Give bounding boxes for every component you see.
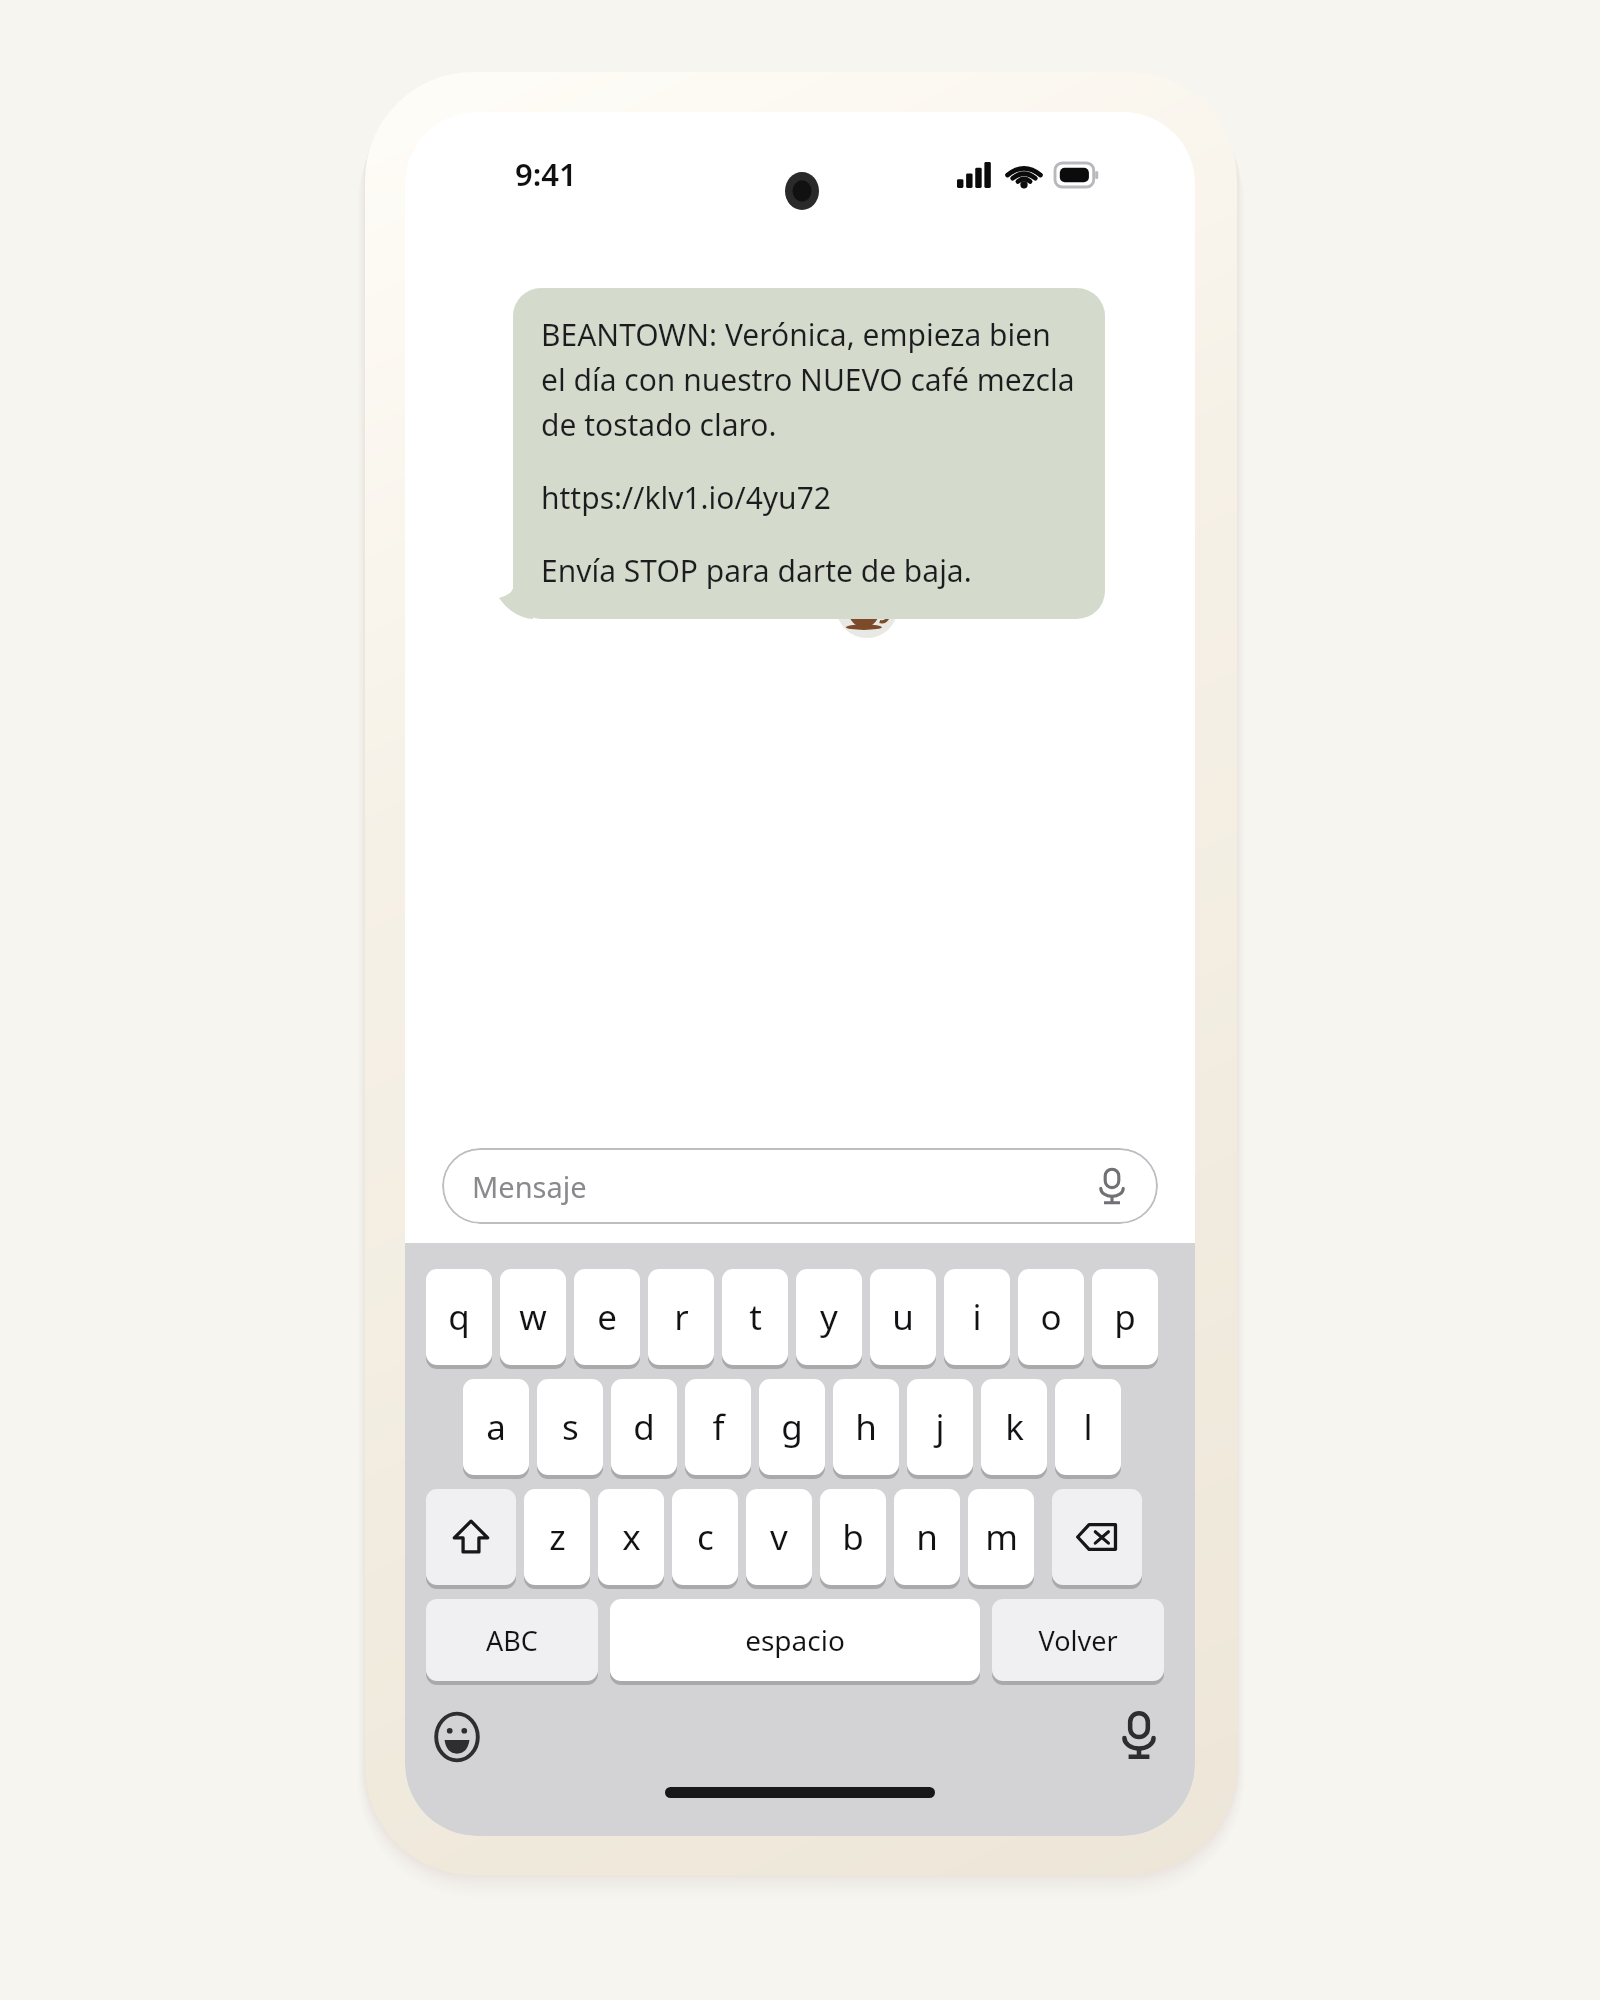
staticText: v bbox=[770, 1513, 788, 1561]
staticText: e bbox=[597, 1293, 617, 1341]
staticText: j bbox=[935, 1403, 945, 1451]
button[interactable]: x bbox=[598, 1489, 664, 1585]
staticText: t bbox=[749, 1293, 762, 1341]
staticText: i bbox=[972, 1293, 982, 1341]
staticText: y bbox=[820, 1293, 838, 1341]
button[interactable]: q bbox=[426, 1269, 492, 1365]
staticText: w bbox=[519, 1293, 547, 1341]
button[interactable]: e bbox=[574, 1269, 640, 1365]
button[interactable]: espacio bbox=[610, 1599, 980, 1681]
button[interactable]: Emoji bbox=[431, 1711, 483, 1763]
button[interactable]: a bbox=[463, 1379, 529, 1475]
staticText: d bbox=[633, 1403, 655, 1451]
button[interactable]: l bbox=[1055, 1379, 1121, 1475]
staticText: f bbox=[712, 1403, 725, 1451]
staticText: n bbox=[916, 1513, 938, 1561]
staticText: o bbox=[1040, 1293, 1062, 1341]
staticText: s bbox=[562, 1403, 579, 1451]
button[interactable]: Shift bbox=[426, 1489, 516, 1585]
button[interactable]: h bbox=[833, 1379, 899, 1475]
staticText: m bbox=[985, 1513, 1018, 1561]
staticText: Envía STOP para darte de baja. bbox=[541, 550, 972, 591]
button[interactable]: c bbox=[672, 1489, 738, 1585]
button[interactable]: Voice input bbox=[1092, 1166, 1132, 1206]
button[interactable]: y bbox=[796, 1269, 862, 1365]
button[interactable]: m bbox=[968, 1489, 1034, 1585]
staticText: 9:41 bbox=[515, 153, 577, 195]
button[interactable]: j bbox=[907, 1379, 973, 1475]
button[interactable]: g bbox=[759, 1379, 825, 1475]
button[interactable]: k bbox=[981, 1379, 1047, 1475]
button[interactable]: BEANTOWN: Verónica, empieza bien el día … bbox=[513, 288, 1105, 619]
button[interactable]: n bbox=[894, 1489, 960, 1585]
button[interactable]: Volver bbox=[992, 1599, 1164, 1681]
staticText: espacio bbox=[745, 1621, 845, 1659]
staticText: BEANTOWN: Verónica, empieza bien el día … bbox=[541, 314, 1079, 445]
button[interactable]: Backspace bbox=[1052, 1489, 1142, 1585]
staticText: u bbox=[892, 1293, 914, 1341]
button[interactable]: Voice typing bbox=[1113, 1709, 1165, 1761]
button[interactable]: b bbox=[820, 1489, 886, 1585]
button[interactable]: d bbox=[611, 1379, 677, 1475]
button[interactable]: s bbox=[537, 1379, 603, 1475]
staticText: c bbox=[697, 1513, 714, 1561]
button[interactable]: i bbox=[944, 1269, 1010, 1365]
button[interactable]: u bbox=[870, 1269, 936, 1365]
button[interactable]: o bbox=[1018, 1269, 1084, 1365]
button[interactable]: f bbox=[685, 1379, 751, 1475]
staticText: a bbox=[486, 1403, 506, 1451]
staticText: q bbox=[448, 1293, 470, 1341]
button[interactable]: w bbox=[500, 1269, 566, 1365]
staticText: k bbox=[1005, 1403, 1024, 1451]
button[interactable]: p bbox=[1092, 1269, 1158, 1365]
button[interactable]: Contact avatar bbox=[836, 576, 898, 638]
button[interactable]: t bbox=[722, 1269, 788, 1365]
staticText: Volver bbox=[1038, 1622, 1118, 1659]
button[interactable]: ABC bbox=[426, 1599, 598, 1681]
staticText: x bbox=[622, 1513, 641, 1561]
button[interactable]: Mensaje bbox=[442, 1148, 1158, 1224]
staticText: r bbox=[674, 1293, 689, 1341]
button[interactable]: z bbox=[524, 1489, 590, 1585]
staticText: g bbox=[781, 1403, 803, 1451]
button[interactable]: r bbox=[648, 1269, 714, 1365]
staticText: z bbox=[549, 1513, 566, 1561]
staticText: Mensaje bbox=[472, 1167, 587, 1206]
staticText: h bbox=[855, 1403, 877, 1451]
staticText: ABC bbox=[486, 1622, 538, 1659]
button[interactable]: v bbox=[746, 1489, 812, 1585]
staticText: p bbox=[1114, 1293, 1136, 1341]
staticText: https://klv1.io/4yu72 bbox=[541, 477, 831, 518]
staticText: l bbox=[1083, 1403, 1093, 1451]
staticText: b bbox=[842, 1513, 864, 1561]
